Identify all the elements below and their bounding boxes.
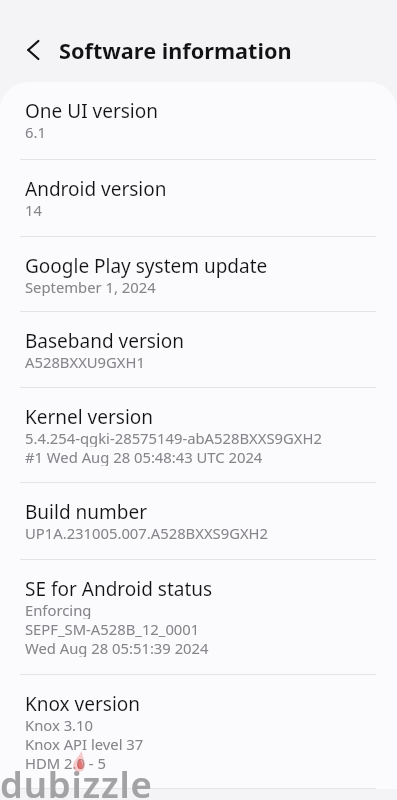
button[interactable]: Knox version [0,675,397,789]
staticText: Software information [59,36,292,66]
button[interactable]: Baseband version [0,312,397,388]
staticText: 14 [25,200,42,219]
staticText: Baseband version [25,328,184,354]
button[interactable]: Build number [0,483,397,560]
button[interactable]: Google Play system update [0,237,397,312]
staticText: One UI version [25,98,158,124]
staticText: Google Play system update [25,253,268,279]
staticText: Android version [25,176,167,202]
staticText: A528BXXU9GXH1 [25,352,145,371]
staticText: Knox version [25,691,141,717]
staticText: SEPF_SM-A528B_12_0001 [25,619,200,638]
button[interactable]: Kernel version [0,388,397,483]
staticText: 6.1 [25,122,46,141]
staticText: Knox 3.10 [25,715,93,734]
staticText: UP1A.231005.007.A528BXXS9GXH2 [25,523,269,542]
staticText: Enforcing [25,600,92,619]
button[interactable]: One UI version [0,82,397,160]
staticText: 5.4.254-qgki-28575149-abA528BXXS9GXH2 [25,428,322,447]
staticText: SE for Android status [25,576,213,602]
staticText: September 1, 2024 [25,277,156,296]
staticText: Kernel version [25,404,154,430]
button[interactable]: Android version [0,160,397,237]
staticText: Knox API level 37 [25,734,144,753]
staticText: #1 Wed Aug 28 05:48:43 UTC 2024 [25,447,263,466]
staticText: HDM 2.0 - 5 [25,753,106,772]
button[interactable]: SE for Android status [0,560,397,675]
staticText: Build number [25,499,148,525]
staticText: Wed Aug 28 05:51:39 2024 [25,638,209,657]
staticText: dubizzle [0,759,153,800]
button[interactable]: Back [10,28,54,72]
